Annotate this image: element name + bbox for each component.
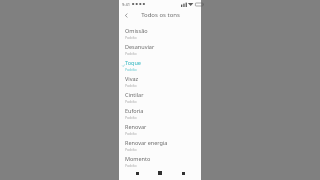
staticText: Padrão — [125, 115, 137, 120]
button[interactable]: Início — [155, 168, 165, 178]
button[interactable]: Voltar — [132, 168, 142, 178]
staticText: Momento — [125, 155, 151, 162]
staticText: Padrão — [125, 51, 137, 56]
button[interactable]: Vivaz — [119, 73, 201, 89]
staticText: Toque — [125, 59, 141, 66]
button[interactable]: Desanuviar — [119, 41, 201, 57]
staticText: Padrão — [125, 67, 137, 72]
button[interactable]: Cintilar — [119, 89, 201, 105]
staticText: Padrão — [125, 131, 137, 136]
staticText: Renovar — [125, 123, 147, 130]
staticText: Renovar energia — [125, 139, 168, 146]
staticText: 9:41 — [122, 2, 130, 7]
staticText: Padrão — [125, 83, 137, 88]
staticText: Padrão — [125, 147, 137, 152]
staticText: Padrão — [125, 35, 137, 40]
staticText: Cintilar — [125, 91, 144, 98]
button[interactable]: Recentes — [178, 168, 188, 178]
button[interactable]: Renovar — [119, 121, 201, 137]
button[interactable]: Omissão — [119, 25, 201, 41]
button[interactable]: Euforia — [119, 105, 201, 121]
staticText: Omissão — [125, 27, 148, 34]
staticText: Euforia — [125, 107, 144, 114]
staticText: Desanuviar — [125, 43, 155, 50]
button[interactable]: Renovar energia — [119, 137, 201, 153]
staticText: Vivaz — [125, 75, 139, 82]
staticText: Padrão — [125, 163, 137, 168]
staticText: Todos os tons — [141, 11, 180, 19]
button[interactable]: Momento — [119, 153, 201, 169]
button[interactable]: Voltar — [120, 9, 132, 21]
button[interactable]: Toque — [119, 57, 201, 73]
staticText: Padrão — [125, 99, 137, 104]
